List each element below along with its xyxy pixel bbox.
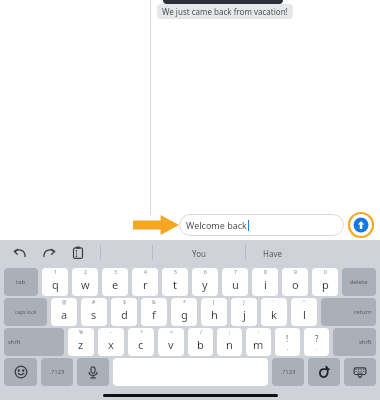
button[interactable]: & <box>141 298 167 326</box>
staticText: shift <box>8 338 21 346</box>
staticText: $ <box>123 299 126 306</box>
staticText: x <box>108 337 114 352</box>
button[interactable]: 6 <box>192 268 218 296</box>
button[interactable]: ; <box>217 328 242 356</box>
button[interactable]: delete <box>342 268 376 296</box>
staticText: z <box>78 337 84 352</box>
staticText: e <box>112 277 119 292</box>
button[interactable]: tab <box>4 268 38 296</box>
staticText: h <box>211 307 218 322</box>
button[interactable]: 4 <box>132 268 158 296</box>
button[interactable]: Redo <box>41 245 57 261</box>
staticText: j <box>243 307 246 322</box>
button[interactable]: = <box>158 328 184 356</box>
staticText: I <box>75 248 78 259</box>
button[interactable]: 0 <box>312 268 338 296</box>
button[interactable]: .?123 <box>272 358 304 386</box>
button[interactable]: * <box>171 298 197 326</box>
staticText: delete <box>350 278 368 286</box>
staticText: ( <box>213 299 215 306</box>
staticText: w <box>81 277 90 292</box>
button[interactable]: Handwriting <box>308 358 340 386</box>
staticText: 8 <box>264 269 267 276</box>
button[interactable]: ) <box>231 298 257 326</box>
button[interactable]: Send <box>348 212 374 238</box>
staticText: s <box>91 307 97 322</box>
staticText: = <box>170 329 173 336</box>
staticText: + <box>140 329 143 336</box>
button[interactable]: Welcome back <box>179 214 344 236</box>
button[interactable]: ? <box>304 328 329 356</box>
button[interactable]: You <box>152 240 245 266</box>
button[interactable]: shift <box>333 328 376 356</box>
staticText: " <box>303 299 306 306</box>
button[interactable]: caps lock <box>4 298 47 326</box>
staticText: . <box>316 344 318 352</box>
staticText: 6 <box>204 269 207 276</box>
staticText: ; <box>229 329 231 336</box>
button[interactable]: return <box>321 298 376 326</box>
staticText: You <box>192 248 206 259</box>
button[interactable]: ' <box>261 298 287 326</box>
staticText: ! <box>286 333 289 344</box>
button[interactable]: 3 <box>102 268 128 296</box>
staticText: 0 <box>324 269 327 276</box>
button[interactable]: " <box>291 298 317 326</box>
staticText: 3 <box>114 269 117 276</box>
staticText: .?123 <box>281 368 296 376</box>
staticText: c <box>138 337 144 352</box>
button[interactable]: 7 <box>222 268 248 296</box>
staticText: .?123 <box>50 368 65 376</box>
button[interactable]: ! <box>275 328 300 356</box>
staticText: @ <box>62 299 67 306</box>
staticText: 5 <box>174 269 177 276</box>
button[interactable]: $ <box>111 298 137 326</box>
button[interactable]: Have <box>245 240 380 266</box>
staticText: & <box>152 299 156 306</box>
staticText: n <box>226 337 233 352</box>
staticText: 7 <box>234 269 237 276</box>
button[interactable]: 1 <box>42 268 68 296</box>
staticText: % <box>79 329 84 336</box>
staticText: 9 <box>294 269 297 276</box>
staticText: m <box>253 337 264 352</box>
staticText: ) <box>243 299 245 306</box>
button[interactable]: % <box>68 328 94 356</box>
button[interactable]: shift <box>4 328 64 356</box>
button[interactable]: We just came back from vacation! <box>157 4 293 19</box>
button[interactable]: # <box>81 298 107 326</box>
button[interactable]: 9 <box>282 268 308 296</box>
staticText: b <box>197 337 204 352</box>
staticText: t <box>173 277 177 292</box>
button[interactable]: Voice input <box>77 358 109 386</box>
staticText: y <box>202 277 208 292</box>
button[interactable]: @ <box>51 298 77 326</box>
staticText: 2 <box>84 269 87 276</box>
staticText: , <box>287 344 289 352</box>
button[interactable]: Hide keyboard <box>344 358 376 386</box>
staticText: f <box>152 307 156 322</box>
staticText: g <box>181 307 188 322</box>
staticText: Welcome back <box>186 219 247 231</box>
button[interactable]: 8 <box>252 268 278 296</box>
button[interactable]: 5 <box>162 268 188 296</box>
button[interactable]: 2 <box>72 268 98 296</box>
button[interactable]: - <box>98 328 124 356</box>
button[interactable]: Undo <box>12 245 28 261</box>
staticText: l <box>303 307 306 322</box>
button[interactable]: / <box>188 328 213 356</box>
button[interactable]: Emoji <box>4 358 37 386</box>
staticText: p <box>322 277 329 292</box>
staticText: u <box>232 277 239 292</box>
staticText: 4 <box>144 269 147 276</box>
button[interactable]: + <box>128 328 154 356</box>
staticText: / <box>200 329 202 336</box>
button[interactable]: ( <box>201 298 227 326</box>
staticText: We just came back from vacation! <box>162 6 288 17</box>
button[interactable]: : <box>246 328 271 356</box>
button[interactable]: .?123 <box>41 358 73 386</box>
staticText: shift <box>359 338 372 346</box>
button[interactable]: Clipboard <box>70 245 86 261</box>
button[interactable]: I <box>0 240 152 266</box>
